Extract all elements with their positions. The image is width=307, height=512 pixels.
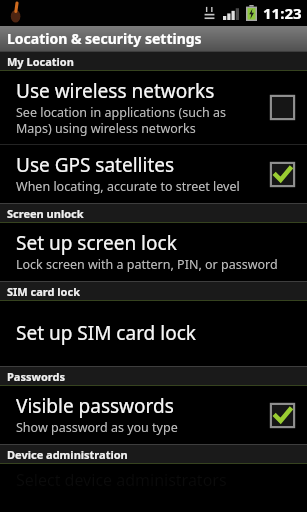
staticText: Use GPS satellites (16, 152, 175, 178)
staticText: Screen unlock (7, 206, 84, 221)
button[interactable]: Use wireless networks (0, 71, 307, 144)
staticText: Location & security settings (7, 29, 202, 48)
staticText: Set up screen lock (16, 230, 177, 256)
staticText: Device administration (7, 447, 128, 462)
button[interactable]: Enabled checkbox (267, 400, 297, 430)
staticText: Show password as you type (16, 419, 178, 436)
staticText: See location in applications (such as Ma… (16, 104, 227, 136)
button[interactable]: Visible passwords (0, 386, 307, 444)
staticText: Passwords (7, 369, 65, 384)
button[interactable]: Use GPS satellites (0, 145, 307, 203)
staticText: My Location (7, 54, 74, 69)
staticText: Visible passwords (16, 393, 174, 419)
staticText: 11:23 (263, 3, 302, 23)
staticText: Set up SIM card lock (16, 320, 196, 346)
button[interactable]: Enabled checkbox (267, 159, 297, 189)
button[interactable]: Disabled checkbox (267, 92, 297, 122)
staticText: SIM card lock (7, 284, 80, 299)
button[interactable]: Set up screen lock (0, 223, 307, 281)
staticText: Lock screen with a pattern, PIN, or pass… (16, 256, 278, 273)
staticText: Use wireless networks (16, 78, 215, 104)
staticText: When locating, accurate to street level (16, 178, 240, 195)
button[interactable]: Set up SIM card lock (0, 301, 307, 366)
